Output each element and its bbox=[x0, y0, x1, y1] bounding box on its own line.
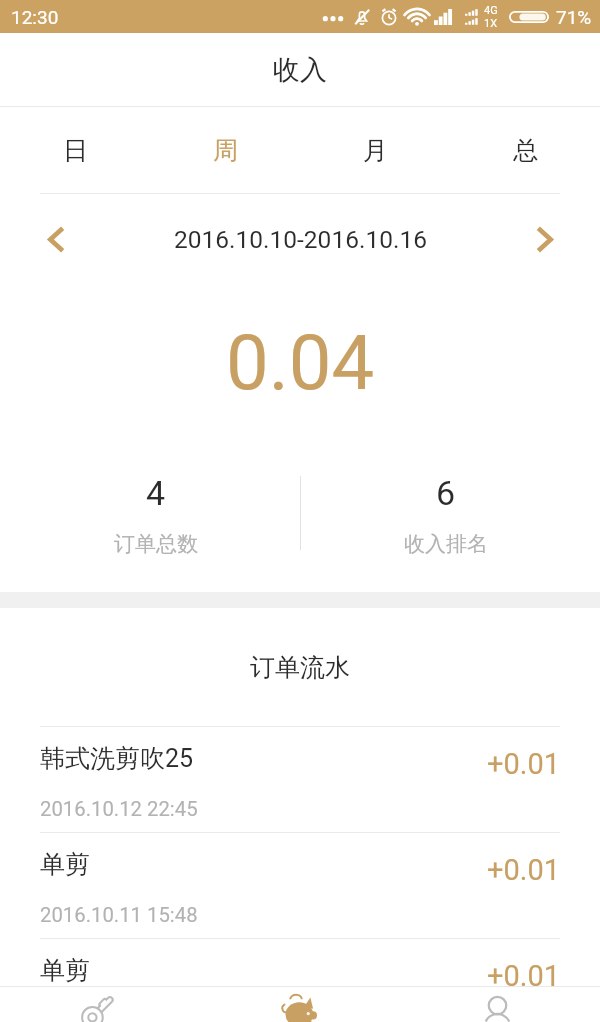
button[interactable]: 6 bbox=[300, 440, 600, 592]
staticText: 0.04 bbox=[226, 318, 375, 407]
staticText: 单剪 bbox=[40, 955, 90, 986]
button[interactable]: Next week bbox=[520, 215, 568, 263]
staticText: 收入 bbox=[273, 53, 327, 87]
staticText: 12:30 bbox=[11, 6, 59, 28]
staticText: 2016.10.10 09:02 bbox=[40, 1009, 198, 1022]
staticText: 1X bbox=[484, 17, 498, 30]
staticText: 月 bbox=[363, 135, 388, 166]
button[interactable]: 韩式洗剪吹25 bbox=[0, 726, 600, 832]
staticText: 收入排名 bbox=[404, 531, 488, 557]
button[interactable]: 单剪 bbox=[0, 938, 600, 1022]
staticText: 日 bbox=[63, 135, 88, 166]
button[interactable]: 月 bbox=[300, 107, 450, 193]
button[interactable]: Previous week bbox=[32, 215, 80, 263]
button[interactable]: Services bbox=[0, 987, 200, 1022]
staticText: 4 bbox=[146, 473, 166, 513]
button[interactable]: 单剪 bbox=[0, 832, 600, 938]
staticText: +0.01 bbox=[487, 747, 560, 781]
staticText: +0.01 bbox=[487, 853, 560, 887]
staticText: +0.01 bbox=[487, 959, 560, 993]
staticText: 订单总数 bbox=[114, 531, 198, 557]
staticText: 6 bbox=[436, 473, 456, 513]
staticText: 周 bbox=[213, 135, 238, 166]
staticText: 71% bbox=[556, 6, 592, 28]
button[interactable]: Profile bbox=[400, 987, 600, 1022]
staticText: 总 bbox=[513, 135, 538, 166]
staticText: 2016.10.12 22:45 bbox=[40, 797, 198, 821]
staticText: 订单流水 bbox=[250, 652, 350, 683]
staticText: 单剪 bbox=[40, 849, 90, 880]
button[interactable]: 4 bbox=[0, 440, 300, 592]
button[interactable]: Income bbox=[200, 987, 400, 1022]
staticText: 4G bbox=[484, 4, 498, 17]
staticText: 2016.10.11 15:48 bbox=[40, 903, 198, 927]
staticText: 2016.10.10-2016.10.16 bbox=[174, 225, 427, 254]
button[interactable]: 日 bbox=[0, 107, 150, 193]
staticText: 韩式洗剪吹25 bbox=[40, 743, 194, 774]
button[interactable]: 周 bbox=[150, 107, 300, 193]
button[interactable]: 总 bbox=[450, 107, 600, 193]
